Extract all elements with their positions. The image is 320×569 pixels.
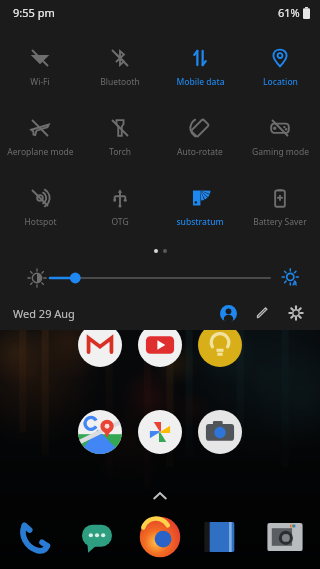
button[interactable]: User	[213, 298, 243, 328]
other: Auto brightness	[282, 269, 300, 287]
button[interactable]	[138, 323, 182, 367]
button[interactable]: Brightness slider	[50, 268, 270, 288]
button[interactable]: Edit	[247, 298, 277, 328]
button[interactable]: Wed 29 Aug	[13, 306, 75, 321]
staticText: 61%	[278, 5, 300, 20]
staticText: Location	[263, 76, 298, 88]
button[interactable]	[263, 515, 307, 559]
button[interactable]: Auto-rotate	[160, 102, 240, 172]
button[interactable]	[198, 410, 242, 454]
staticText: Torch	[109, 146, 131, 158]
staticText: 9:55 pm	[13, 5, 55, 20]
button[interactable]: Settings	[281, 298, 311, 328]
button[interactable]	[78, 323, 122, 367]
button[interactable]	[13, 515, 57, 559]
staticText: Gaming mode	[252, 146, 309, 158]
button[interactable]: Location	[240, 32, 320, 102]
button[interactable]	[78, 410, 122, 454]
button[interactable]	[138, 515, 182, 559]
button[interactable]: Open app drawer	[148, 484, 172, 508]
button[interactable]: Battery Saver	[240, 172, 320, 242]
button[interactable]	[138, 410, 182, 454]
button[interactable]: Torch	[80, 102, 160, 172]
staticText: substratum	[176, 216, 224, 228]
staticText: Hotspot	[24, 216, 57, 228]
button[interactable]: Wi-Fi	[0, 32, 80, 102]
staticText: OTG	[111, 216, 129, 228]
button[interactable]: Hotspot	[0, 172, 80, 242]
button[interactable]: Gaming mode	[240, 102, 320, 172]
staticText: Auto-rotate	[177, 146, 223, 158]
button[interactable]: Aeroplane mode	[0, 102, 80, 172]
button[interactable]	[75, 515, 119, 559]
staticText: Aeroplane mode	[7, 146, 74, 158]
button[interactable]: Bluetooth	[80, 32, 160, 102]
button[interactable]: OTG	[80, 172, 160, 242]
staticText: Bluetooth	[100, 76, 140, 88]
staticText: Battery Saver	[253, 216, 307, 228]
button[interactable]: Mobile data	[160, 32, 240, 102]
staticText: Wi-Fi	[30, 76, 50, 88]
button[interactable]	[200, 515, 244, 559]
other: Brightness	[28, 269, 46, 287]
button[interactable]	[198, 323, 242, 367]
staticText: Mobile data	[176, 76, 225, 88]
button[interactable]: substratum	[160, 172, 240, 242]
